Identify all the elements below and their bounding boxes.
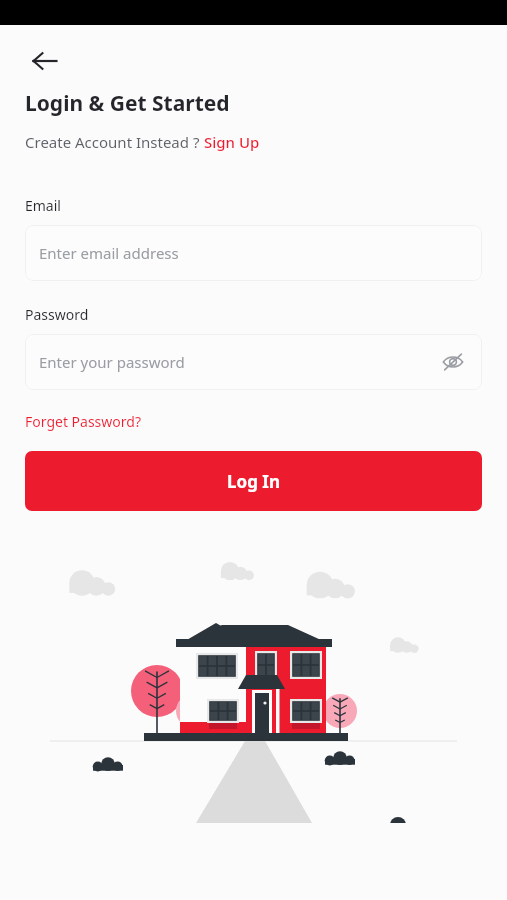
staticText: Password <box>25 305 89 324</box>
button[interactable]: Forget Password? <box>25 412 141 431</box>
staticText: Log In <box>227 470 280 493</box>
staticText: Login & Get Started <box>25 89 230 118</box>
staticText: Enter your password <box>39 352 185 372</box>
button[interactable]: Show password <box>438 347 468 377</box>
button[interactable]: Sign Up <box>204 132 260 152</box>
staticText: Email <box>25 196 61 215</box>
button[interactable]: Log In <box>25 451 482 511</box>
staticText: Enter email address <box>39 243 179 263</box>
button[interactable]: Enter email address <box>25 225 482 281</box>
staticText: Sign Up <box>204 132 260 152</box>
staticText: Create Account Instead ? <box>25 132 204 152</box>
button[interactable]: Back <box>25 41 65 81</box>
button[interactable]: Enter your password <box>25 334 482 390</box>
staticText: Forget Password? <box>25 412 141 431</box>
